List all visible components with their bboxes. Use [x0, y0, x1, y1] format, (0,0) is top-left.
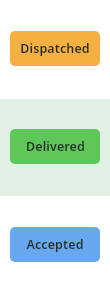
- staticText: Accepted: [26, 236, 84, 253]
- staticText: Dispatched: [20, 40, 90, 57]
- button[interactable]: Accepted: [10, 227, 100, 262]
- staticText: Delivered: [26, 138, 85, 155]
- button[interactable]: Dispatched: [10, 31, 100, 66]
- button[interactable]: Delivered: [10, 129, 100, 164]
